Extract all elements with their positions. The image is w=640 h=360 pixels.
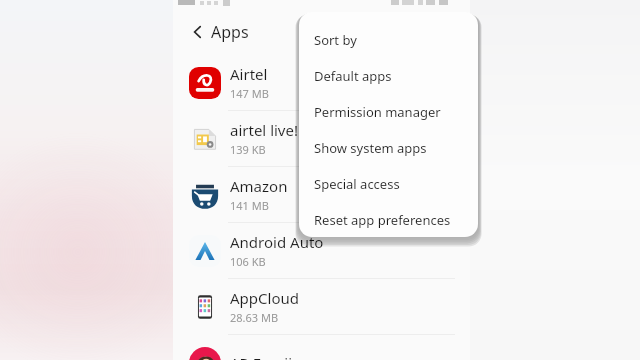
staticText: Sort by xyxy=(314,31,357,49)
staticText: airtel live! xyxy=(230,120,298,140)
staticText: 139 KB xyxy=(230,142,266,157)
staticText: Android Auto xyxy=(230,232,324,252)
button[interactable]: Airtel xyxy=(173,55,470,110)
button[interactable]: Sort by xyxy=(299,22,478,58)
staticText: Default apps xyxy=(314,67,392,85)
staticText: AppCloud xyxy=(230,288,299,308)
staticText: 106 KB xyxy=(230,254,266,269)
staticText: Amazon xyxy=(230,176,288,196)
button[interactable]: Special access xyxy=(299,166,478,202)
staticText: Airtel xyxy=(230,64,268,84)
button[interactable]: Back xyxy=(182,16,214,48)
staticText: AR Emoji xyxy=(230,353,292,360)
staticText: 147 MB xyxy=(230,86,269,101)
staticText: Permission manager xyxy=(314,103,441,121)
staticText: Reset app preferences xyxy=(314,211,451,229)
staticText: 28.63 MB xyxy=(230,310,279,325)
button[interactable]: AR Emoji xyxy=(173,335,470,360)
button[interactable]: Reset app preferences xyxy=(299,202,478,237)
button[interactable]: Default apps xyxy=(299,58,478,94)
button[interactable]: Amazon xyxy=(173,167,470,222)
staticText: Show system apps xyxy=(314,139,427,157)
button[interactable]: Show system apps xyxy=(299,130,478,166)
staticText: Special access xyxy=(314,175,400,193)
staticText: Apps xyxy=(211,21,249,43)
button[interactable]: AppCloud xyxy=(173,279,470,334)
staticText: 141 MB xyxy=(230,198,269,213)
button[interactable]: airtel live! xyxy=(173,111,470,166)
button[interactable]: Android Auto xyxy=(173,223,470,278)
button[interactable]: Permission manager xyxy=(299,94,478,130)
